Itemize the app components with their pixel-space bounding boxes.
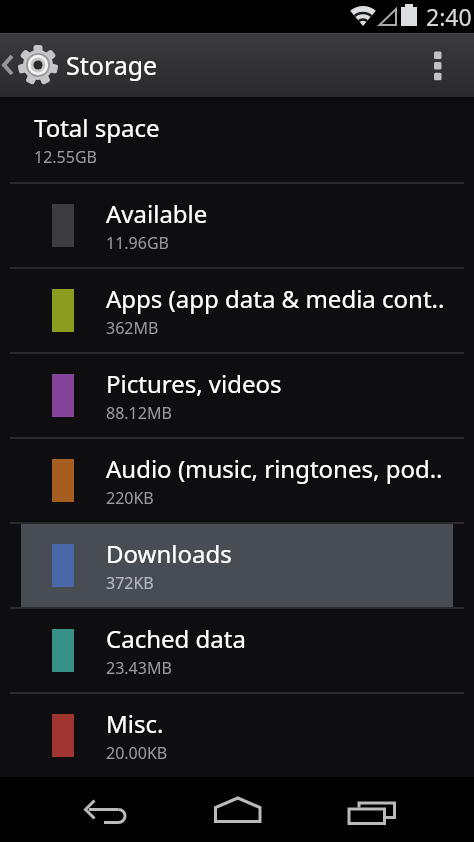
button[interactable]	[303, 777, 434, 842]
button[interactable]	[41, 777, 172, 842]
button[interactable]: Cached data	[0, 609, 474, 692]
button[interactable]: Storage	[0, 33, 474, 97]
staticText: 372KB	[106, 572, 154, 594]
staticText: Misc.	[106, 707, 164, 740]
staticText: Cached data	[106, 622, 246, 655]
button[interactable]: Misc.	[0, 694, 474, 777]
staticText: 2:40	[426, 1, 472, 32]
staticText: Audio (music, ringtones, pod..	[106, 452, 443, 485]
staticText: 220KB	[106, 487, 154, 509]
staticText: 20.00KB	[106, 742, 168, 764]
button[interactable]	[172, 777, 303, 842]
button[interactable]: Apps (app data & media cont..	[0, 269, 474, 352]
button[interactable]: Downloads	[21, 524, 453, 607]
staticText: 12.55GB	[34, 146, 97, 168]
button[interactable]: Pictures, videos	[0, 354, 474, 437]
button[interactable]: Total space	[0, 97, 474, 182]
staticText: 88.12MB	[106, 402, 172, 424]
staticText: Available	[106, 197, 208, 230]
button[interactable]	[430, 33, 474, 97]
button[interactable]: Audio (music, ringtones, pod..	[0, 439, 474, 522]
button[interactable]: Available	[0, 184, 474, 267]
staticText: Total space	[34, 111, 160, 144]
staticText: Apps (app data & media cont..	[106, 282, 445, 315]
staticText: 362MB	[106, 317, 159, 339]
staticText: Pictures, videos	[106, 367, 282, 400]
staticText: Storage	[66, 48, 158, 82]
staticText: 23.43MB	[106, 657, 172, 679]
staticText: 11.96GB	[106, 232, 169, 254]
staticText: Downloads	[106, 537, 232, 570]
